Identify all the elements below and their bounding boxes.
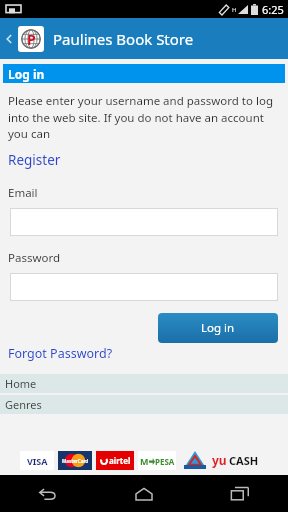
staticText: Paulines Book Store [53,29,194,49]
staticText: Log in [201,320,235,336]
button[interactable]: Back [0,475,96,512]
button[interactable] [10,208,278,236]
staticText: yu [212,452,227,468]
staticText: Log in [8,66,45,82]
staticText: P [27,30,36,49]
button[interactable]: Forgot Password? [8,345,113,362]
button[interactable]: Log in [158,313,278,343]
staticText: Genres [5,397,42,412]
button[interactable]: Recent apps [192,475,288,512]
staticText: Home [5,376,37,391]
button[interactable]: Home [96,475,192,512]
button[interactable]: Genres [0,395,288,414]
staticText: Password [8,250,61,266]
staticText: M [140,455,149,467]
staticText: CASH [229,453,259,468]
staticText: PESA [155,456,175,467]
staticText: airtel [109,455,131,466]
button[interactable]: Home [0,374,288,393]
button[interactable] [10,273,278,301]
button[interactable]: Back [2,31,18,47]
staticText: Email [8,185,38,201]
staticText: 6:25 [262,2,284,17]
staticText: Forgot Password? [8,345,113,362]
staticText: Register [8,151,61,169]
staticText: Please enter your username and password … [8,93,280,141]
staticText: MasterCard [62,458,89,464]
staticText: H [232,6,237,14]
staticText: VISA [27,455,48,467]
button[interactable]: Register [8,151,61,169]
